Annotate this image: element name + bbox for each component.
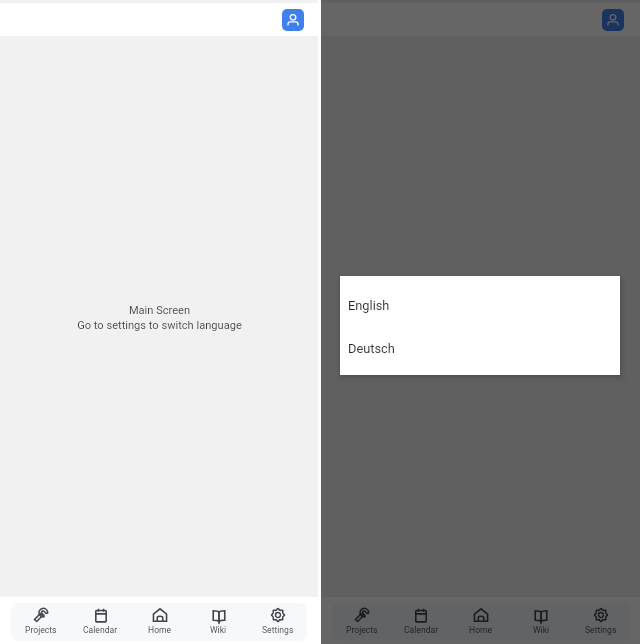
button[interactable]: Account [282, 9, 304, 31]
staticText: Projects [346, 625, 378, 635]
staticText: Home [148, 625, 172, 635]
button[interactable]: Wiki [189, 603, 248, 641]
button[interactable]: Home [451, 603, 511, 641]
button[interactable]: Calendar [71, 603, 130, 641]
button[interactable]: Calendar [391, 603, 451, 641]
staticText: Calendar [83, 625, 118, 635]
button[interactable]: Settings [571, 603, 631, 641]
staticText: Calendar [404, 625, 439, 635]
staticText: Home [469, 625, 493, 635]
staticText: Settings [585, 625, 617, 635]
button[interactable]: Projects [11, 603, 71, 641]
button[interactable]: Settings [248, 603, 307, 641]
button[interactable]: Account [602, 9, 624, 31]
staticText: English [348, 298, 390, 313]
button[interactable]: English [340, 284, 620, 327]
staticText: Wiki [210, 625, 227, 635]
staticText: Settings [262, 625, 294, 635]
staticText: Projects [25, 625, 57, 635]
staticText: Deutsch [348, 341, 395, 356]
staticText: Main Screen Go to settings to switch lan… [77, 304, 242, 332]
staticText: Wiki [533, 625, 550, 635]
button[interactable]: Home [130, 603, 189, 641]
button[interactable]: Projects [332, 603, 391, 641]
button[interactable]: Deutsch [340, 327, 620, 370]
button[interactable]: Wiki [511, 603, 571, 641]
